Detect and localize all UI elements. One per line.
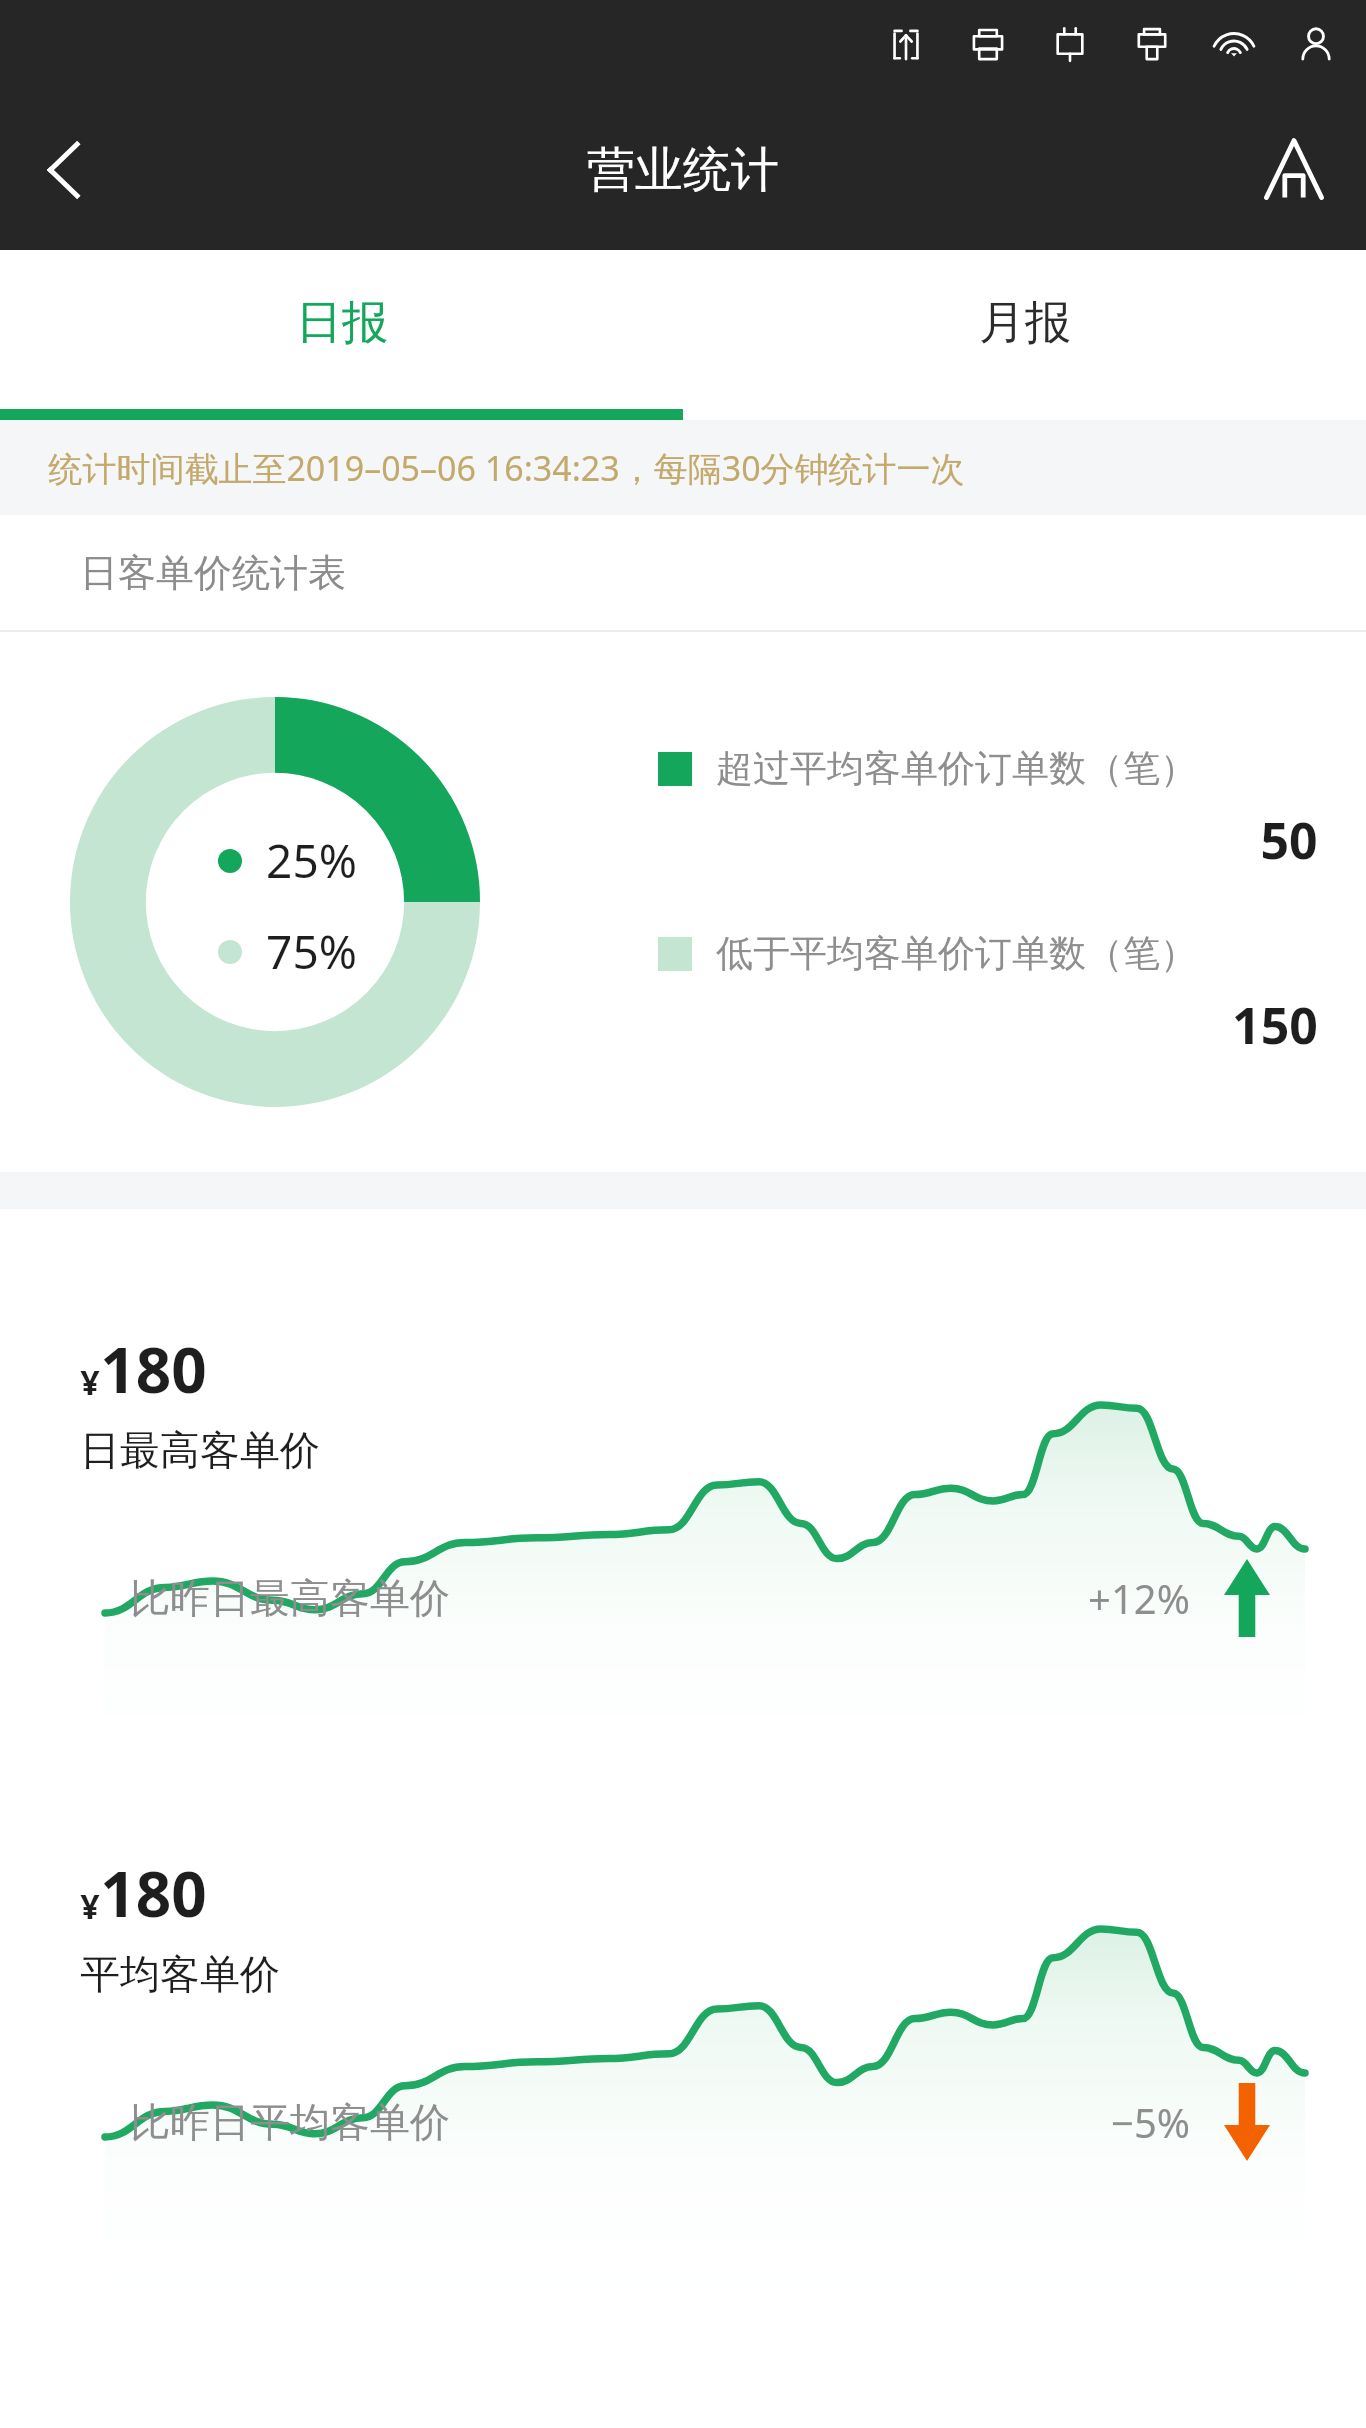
staticText: 统计时间截止至2019–05–06 16:34:23，每隔30分钟统计一次: [48, 445, 965, 491]
staticText: 平均客单价: [80, 1949, 280, 1999]
staticText: 比昨日平均客单价: [130, 2097, 450, 2147]
staticText: 营业统计: [587, 140, 779, 200]
staticText: 50: [1260, 806, 1318, 874]
staticText: 日客单价统计表: [80, 549, 346, 597]
staticText: 日最高客单价: [80, 1425, 320, 1475]
button[interactable]: ¥: [0, 1209, 1366, 1733]
staticText: 日报: [296, 294, 388, 352]
staticText: 月报: [979, 294, 1071, 352]
staticText: 180: [100, 1851, 207, 1935]
staticText: 25%: [266, 829, 357, 892]
button[interactable]: 月报: [683, 250, 1366, 420]
staticText: ¥: [80, 1883, 100, 1929]
staticText: 180: [100, 1327, 207, 1411]
staticText: +12%: [1088, 1571, 1190, 1625]
button[interactable]: Home: [1248, 124, 1340, 216]
button[interactable]: ¥: [0, 1733, 1366, 2257]
staticText: 75%: [266, 920, 357, 983]
button[interactable]: 日报: [0, 250, 683, 420]
staticText: ¥: [80, 1359, 100, 1405]
staticText: 低于平均客单价订单数（笔）: [716, 930, 1197, 977]
staticText: 比昨日最高客单价: [130, 1573, 450, 1623]
button[interactable]: Back: [20, 124, 112, 216]
staticText: 150: [1232, 991, 1318, 1059]
staticText: 超过平均客单价订单数（笔）: [716, 745, 1197, 792]
staticText: −5%: [1111, 2095, 1190, 2149]
